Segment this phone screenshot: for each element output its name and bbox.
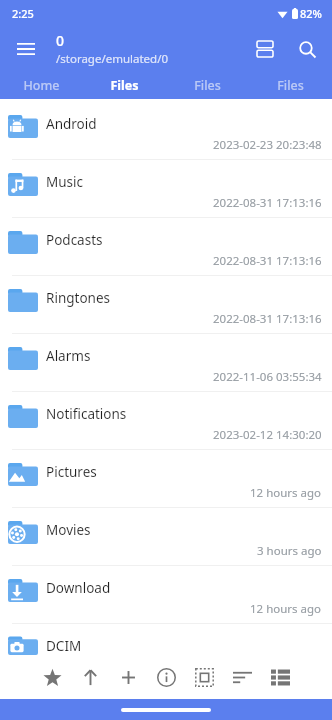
button[interactable]: Sort: [223, 655, 261, 699]
staticText: Files: [277, 77, 304, 94]
button[interactable]: Podcasts: [0, 217, 332, 275]
staticText: 2022-08-31 17:13:16: [213, 253, 322, 269]
staticText: 0: [56, 31, 65, 50]
button[interactable]: Pictures: [0, 449, 332, 507]
staticText: 2023-02-23 20:23:48: [213, 137, 322, 153]
staticText: Pictures: [46, 463, 97, 481]
staticText: Movies: [46, 521, 91, 539]
staticText: 82%: [300, 6, 322, 21]
staticText: Files: [110, 77, 139, 94]
staticText: 12 hours ago: [250, 485, 322, 501]
staticText: DCIM: [46, 637, 82, 655]
staticText: Music: [46, 173, 84, 191]
staticText: 2023-02-12 14:30:20: [213, 427, 322, 443]
button[interactable]: Files: [249, 72, 332, 99]
button[interactable]: Change view layout: [244, 28, 286, 70]
staticText: 3 hours ago: [257, 543, 322, 559]
staticText: Download: [46, 579, 111, 597]
staticText: 12 hours ago: [250, 601, 322, 617]
staticText: Home: [23, 77, 60, 94]
staticText: Podcasts: [46, 231, 103, 249]
button[interactable]: List options: [261, 655, 299, 699]
button[interactable]: Home: [0, 72, 83, 99]
staticText: 2022-08-31 17:13:16: [213, 311, 322, 327]
button[interactable]: Favorite: [33, 655, 71, 699]
staticText: Ringtones: [46, 289, 110, 307]
button[interactable]: Info: [147, 655, 185, 699]
button[interactable]: Download: [0, 565, 332, 623]
staticText: 2:25: [12, 6, 34, 21]
button[interactable]: Files: [83, 72, 166, 99]
button[interactable]: DCIM: [0, 623, 332, 655]
button[interactable]: Music: [0, 159, 332, 217]
button[interactable]: Add: [109, 655, 147, 699]
staticText: Alarms: [46, 347, 91, 365]
button[interactable]: Android: [0, 101, 332, 159]
button[interactable]: Open navigation menu: [6, 29, 46, 69]
staticText: 2022-08-31 17:13:16: [213, 195, 322, 211]
staticText: 2022-11-06 03:55:34: [213, 369, 322, 385]
staticText: Files: [194, 77, 221, 94]
staticText: Notifications: [46, 405, 127, 423]
button[interactable]: Movies: [0, 507, 332, 565]
staticText: Android: [46, 115, 97, 133]
button[interactable]: Ringtones: [0, 275, 332, 333]
button[interactable]: Select all: [185, 655, 223, 699]
button[interactable]: Files: [166, 72, 249, 99]
staticText: /storage/emulated/0: [56, 51, 169, 67]
button[interactable]: Notifications: [0, 391, 332, 449]
button[interactable]: Alarms: [0, 333, 332, 391]
button[interactable]: Move up: [71, 655, 109, 699]
button[interactable]: Search: [286, 28, 328, 70]
